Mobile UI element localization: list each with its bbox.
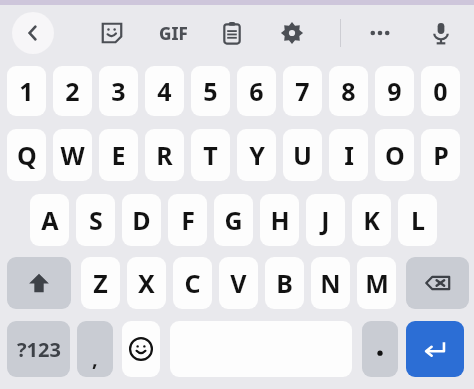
staticText: Y [249,138,265,172]
staticText: 2 [65,74,80,108]
button[interactable]: W [53,129,92,181]
staticText: S [89,203,103,237]
staticText: , [92,345,98,372]
button[interactable]: S [76,194,115,246]
button[interactable]: 8 [329,66,368,116]
button[interactable]: Stickers [92,13,132,53]
button[interactable]: Clipboard [212,13,252,53]
button[interactable]: 7 [283,66,322,116]
staticText: P [433,138,449,172]
button[interactable]: Backspace [406,257,469,309]
button[interactable]: G [214,194,253,246]
button[interactable]: Settings [272,13,312,53]
button[interactable]: U [283,129,322,181]
button[interactable]: Back [12,12,54,54]
button[interactable]: M [357,257,396,309]
staticText: 6 [249,74,264,108]
staticText: C [184,266,201,300]
staticText: J [321,203,330,237]
button[interactable]: J [306,194,345,246]
staticText: D [132,203,151,237]
staticText: R [156,138,173,172]
button[interactable]: Q [7,129,46,181]
staticText: Z [93,266,108,300]
staticText: N [320,266,341,300]
button[interactable]: A [30,194,69,246]
button[interactable]: Period [362,321,398,377]
button[interactable]: More options [358,11,402,55]
button[interactable]: Shift [7,257,71,309]
button[interactable]: Emoji [122,321,160,377]
staticText: F [181,203,195,237]
button[interactable]: F [168,194,207,246]
staticText: U [293,138,312,172]
button[interactable]: ?123 [7,321,70,377]
button[interactable]: Z [81,257,120,309]
button[interactable]: 1 [7,66,46,116]
staticText: B [276,266,293,300]
staticText: T [203,138,218,172]
button[interactable]: O [375,129,414,181]
staticText: 5 [203,74,218,108]
staticText: Q [17,138,37,172]
button[interactable]: 0 [421,66,460,116]
button[interactable]: Comma [77,321,113,377]
staticText: A [41,203,59,237]
staticText: I [344,138,354,172]
staticText: K [363,203,380,237]
staticText: GIF [159,22,188,45]
button[interactable]: X [127,257,166,309]
staticText: M [365,266,389,300]
button[interactable]: D [122,194,161,246]
button[interactable]: R [145,129,184,181]
staticText: W [60,138,85,172]
staticText: E [111,138,126,172]
button[interactable]: N [311,257,350,309]
button[interactable]: B [265,257,304,309]
button[interactable]: K [352,194,391,246]
button[interactable]: E [99,129,138,181]
button[interactable]: C [173,257,212,309]
button[interactable]: I [329,129,368,181]
staticText: 1 [19,74,34,108]
staticText: 8 [341,74,356,108]
button[interactable]: 4 [145,66,184,116]
staticText: G [224,203,243,237]
button[interactable]: GIF [150,13,196,53]
button[interactable]: 9 [375,66,414,116]
button[interactable]: H [260,194,299,246]
button[interactable]: 5 [191,66,230,116]
staticText: L [411,203,425,237]
button[interactable]: Y [237,129,276,181]
staticText: 0 [433,74,448,108]
staticText: O [385,138,405,172]
button[interactable]: L [398,194,437,246]
button[interactable]: 6 [237,66,276,116]
button[interactable]: Enter [406,321,464,377]
staticText: 7 [295,74,310,108]
staticText: X [138,266,155,300]
button[interactable]: P [421,129,460,181]
button[interactable]: T [191,129,230,181]
staticText: 4 [157,74,172,108]
button[interactable]: V [219,257,258,309]
staticText: H [270,203,290,237]
staticText: 9 [387,74,402,108]
staticText: 3 [111,74,126,108]
button[interactable]: 3 [99,66,138,116]
button[interactable]: Voice input [420,12,462,54]
staticText: V [230,266,247,300]
button[interactable]: 2 [53,66,92,116]
staticText: ?123 [17,336,61,363]
